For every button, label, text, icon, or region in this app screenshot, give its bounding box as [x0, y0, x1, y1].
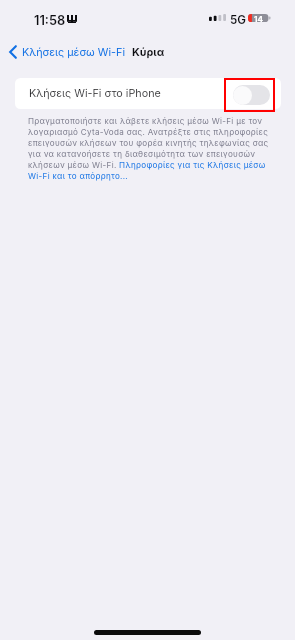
button[interactable]: Wi-Fi Calling switch — [224, 78, 275, 112]
staticText: Κύρια — [132, 46, 165, 59]
button[interactable]: Back — [9, 43, 126, 61]
staticText: 14 — [254, 14, 264, 24]
staticText: Πραγματοποιήστε και λάβετε κλήσεις μέσω … — [28, 116, 274, 180]
button[interactable]: Κλήσεις Wi-Fi στο iPhone — [15, 78, 281, 109]
staticText: Κλήσεις μέσω Wi-Fi — [22, 46, 126, 59]
staticText: 5G — [230, 13, 246, 27]
staticText: 11:58 — [34, 13, 66, 28]
other: Back — [9, 45, 17, 59]
staticText: Κλήσεις Wi-Fi στο iPhone — [29, 87, 161, 100]
